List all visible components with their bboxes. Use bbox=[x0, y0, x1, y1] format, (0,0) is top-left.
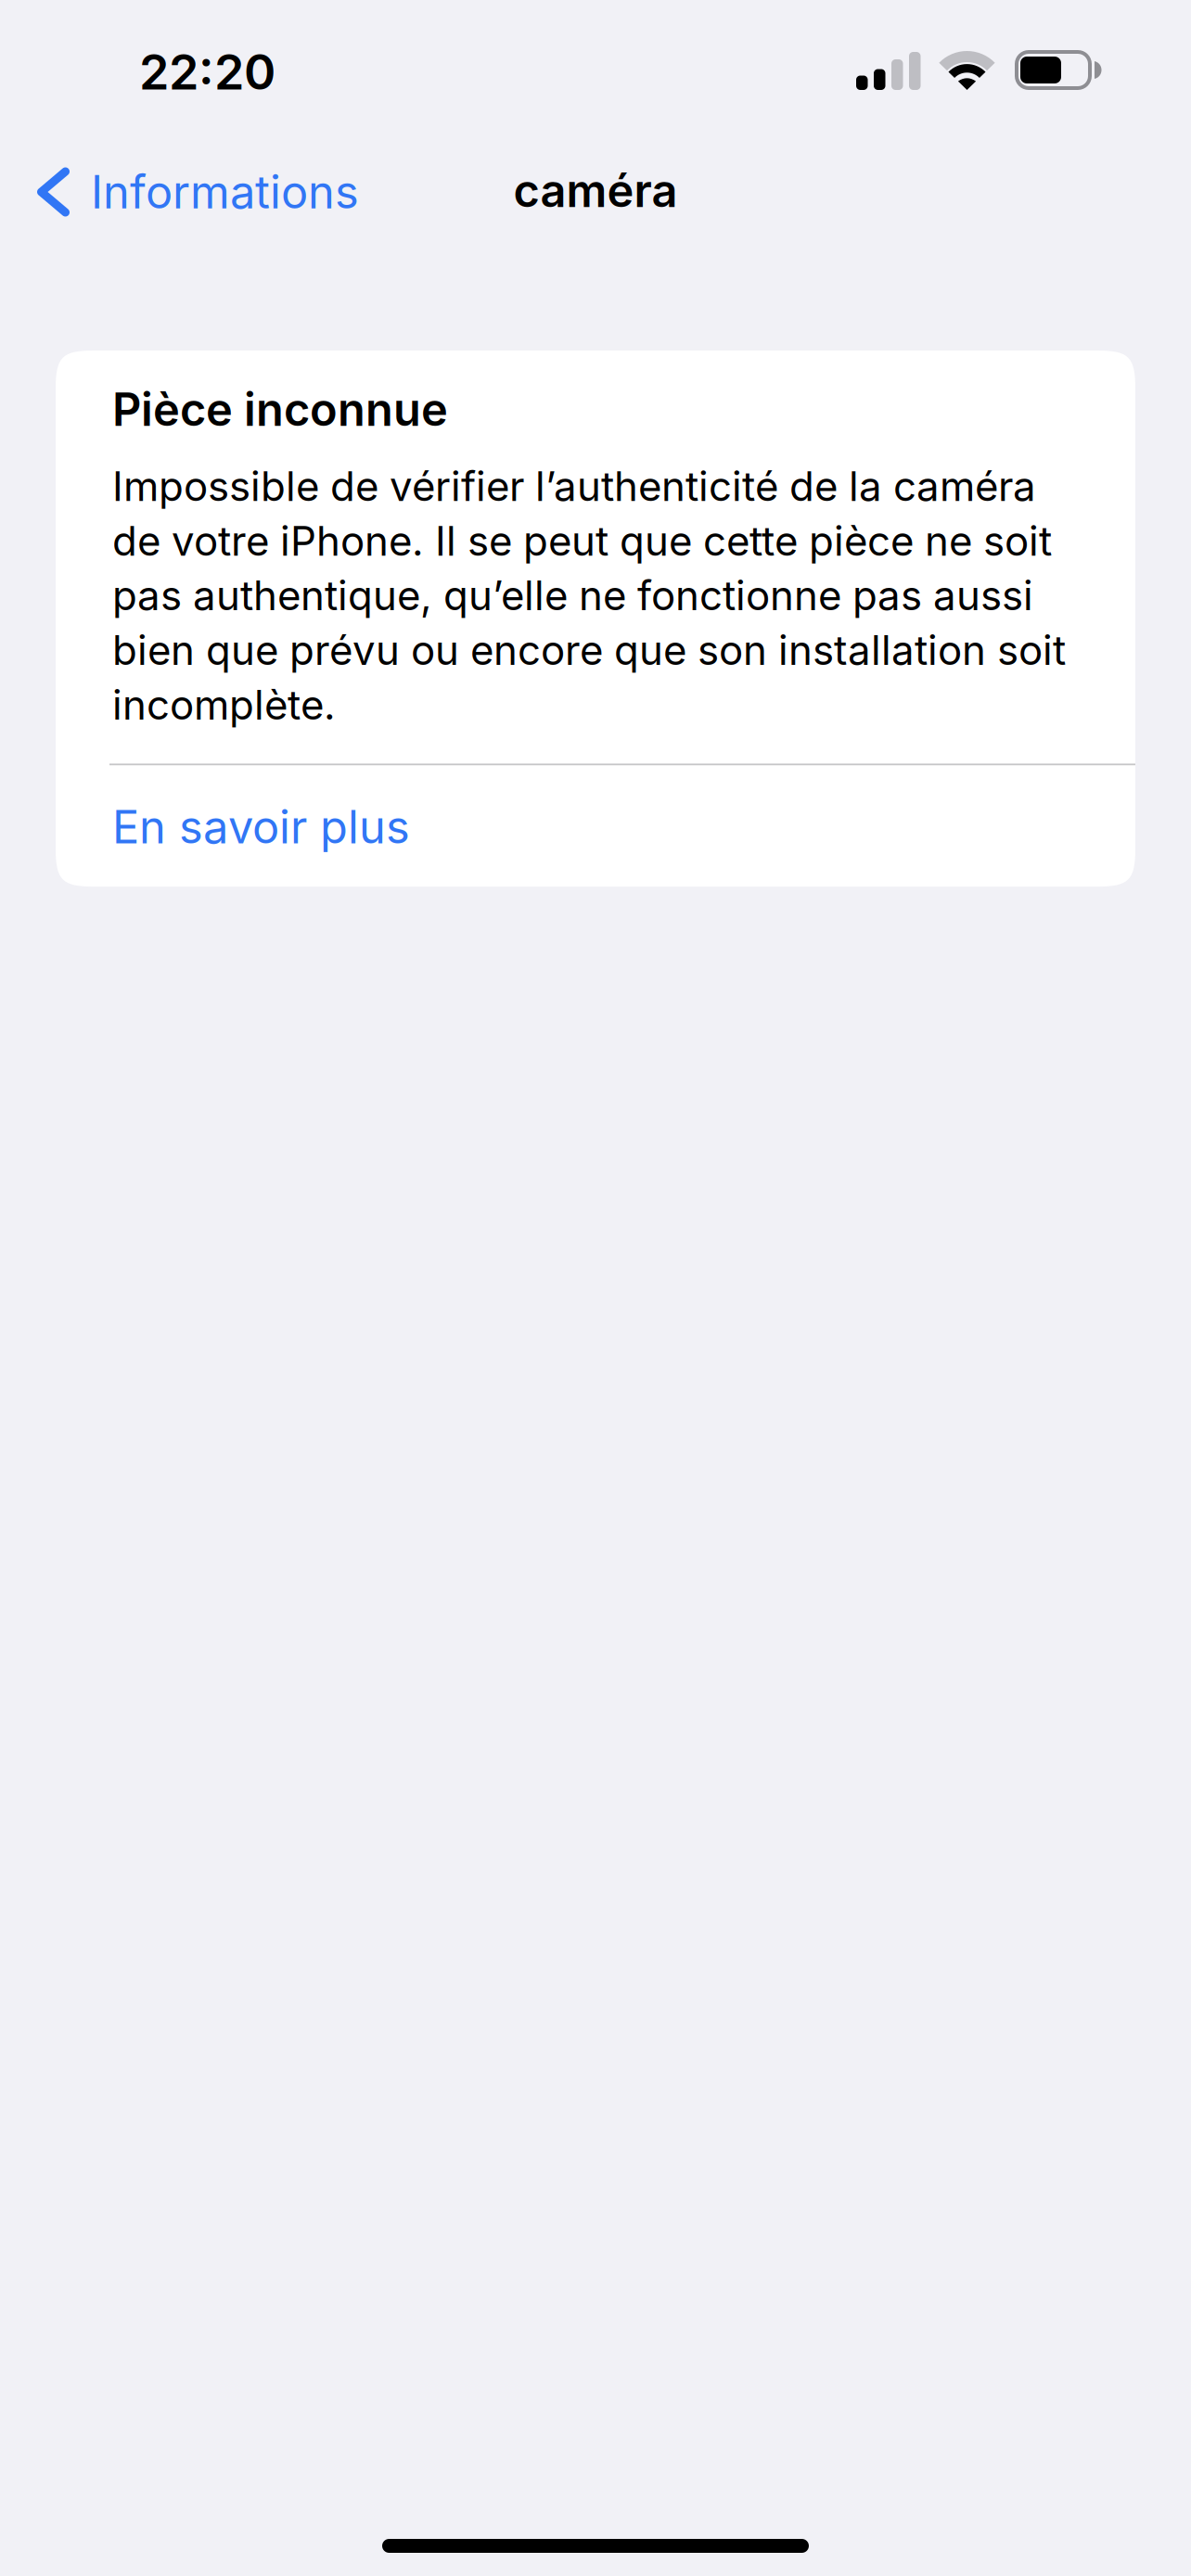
staticText: En savoir plus bbox=[112, 800, 410, 854]
staticText: Pièce inconnue bbox=[112, 382, 448, 437]
staticText: caméra bbox=[513, 163, 678, 218]
staticText: Informations bbox=[91, 165, 359, 219]
staticText: Impossible de vérifier l’authenticité de… bbox=[112, 462, 1066, 729]
staticText: 22:20 bbox=[139, 43, 275, 101]
button[interactable]: En savoir plus bbox=[56, 765, 1135, 887]
button[interactable]: Informations bbox=[0, 131, 408, 253]
